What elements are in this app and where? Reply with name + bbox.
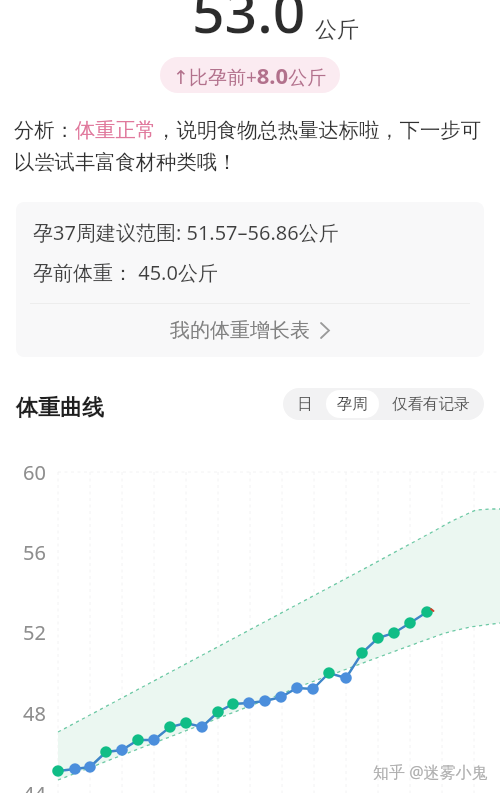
staticText: 孕37周建议范围: 51.57–56.86公斤 [33, 219, 339, 246]
staticText: 44 [23, 780, 46, 793]
staticText: 48 [23, 700, 46, 727]
staticText: 60 [23, 459, 46, 486]
staticText: 分析：体重正常，说明食物总热量达标啦，下一步可以尝试丰富食材种类哦！ [14, 117, 498, 175]
staticText: 知乎 @迷雾小鬼 [373, 761, 488, 783]
staticText: 53.0 [192, 0, 306, 50]
staticText: 孕周 [337, 394, 368, 414]
button[interactable]: 日 [286, 390, 324, 418]
staticText: 仅看有记录 [392, 394, 470, 414]
button[interactable]: 孕周 [326, 390, 379, 418]
staticText: 日 [297, 394, 313, 414]
staticText: 56 [23, 539, 46, 566]
button[interactable]: ↑比孕前+8.0公斤 [160, 57, 340, 93]
staticText: 我的体重增长表 [170, 318, 310, 343]
staticText: 公斤 [315, 16, 359, 44]
button[interactable]: 我的体重增长表 [16, 304, 484, 357]
staticText: ↑比孕前+8.0公斤 [173, 60, 327, 90]
staticText: 孕前体重： 45.0公斤 [33, 259, 218, 286]
button[interactable]: 仅看有记录 [381, 390, 481, 418]
staticText: 52 [23, 619, 46, 646]
staticText: 体重曲线 [16, 394, 104, 422]
